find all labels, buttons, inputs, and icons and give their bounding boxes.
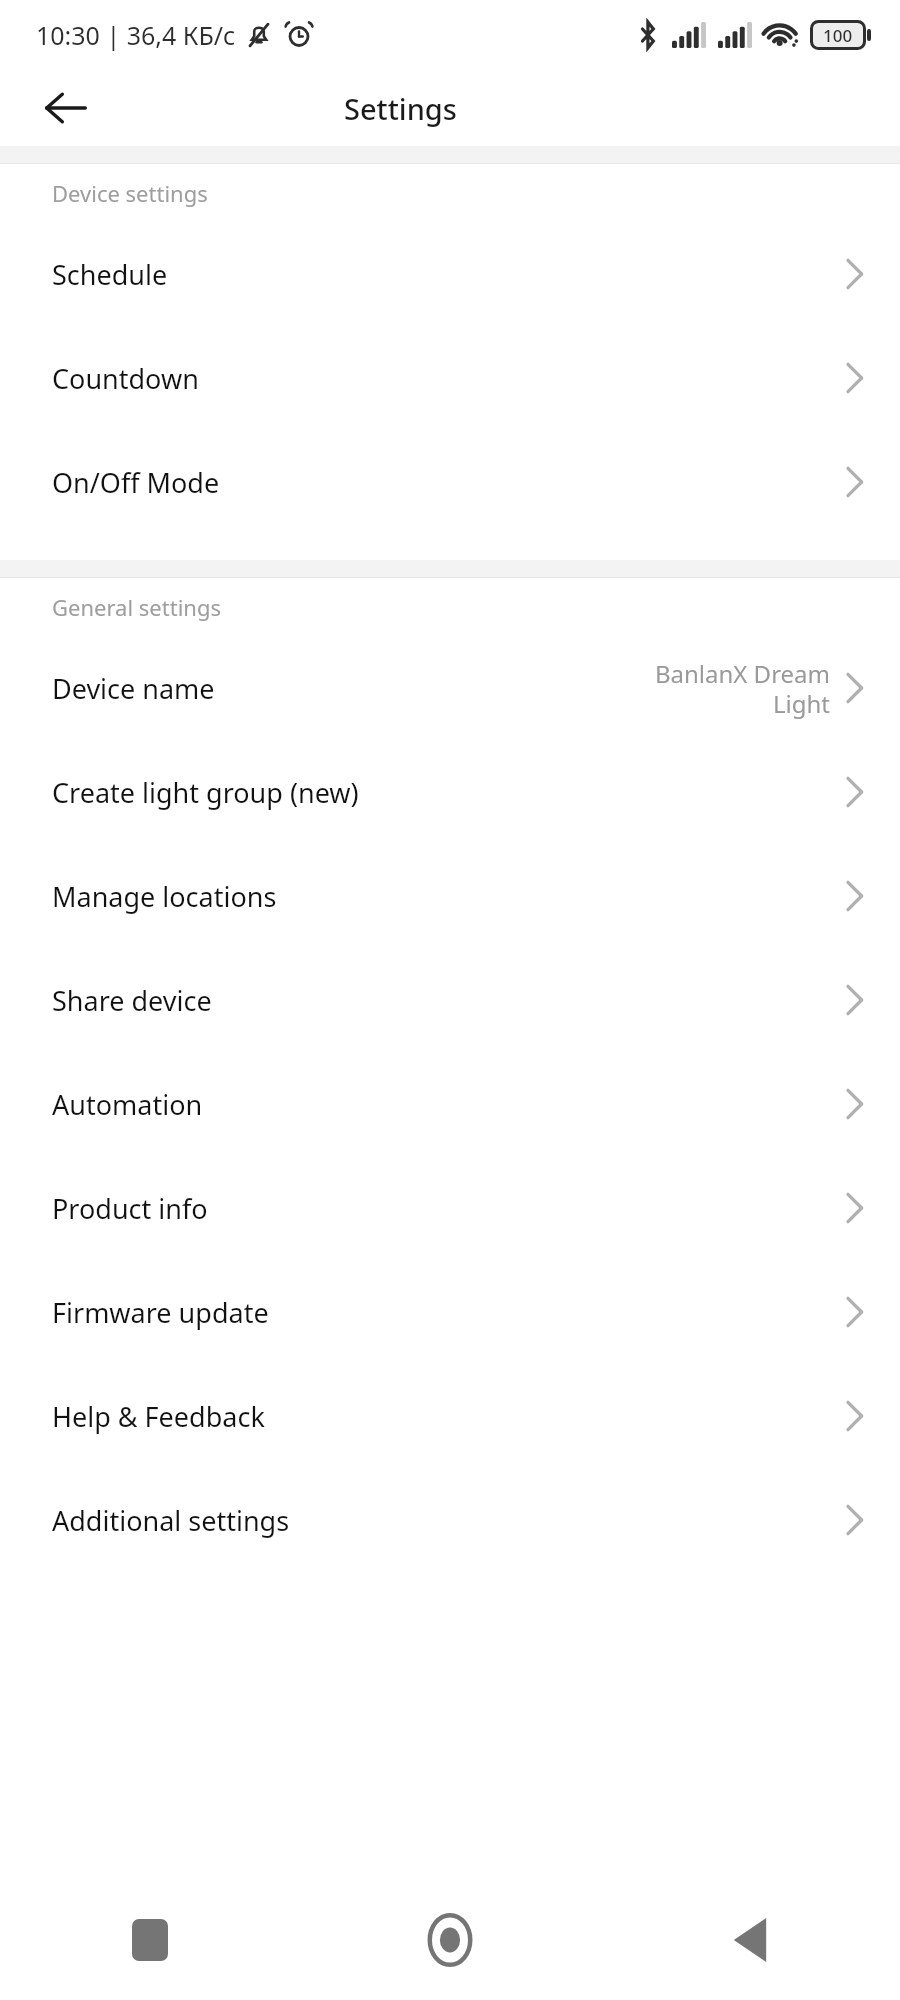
staticText: Create light group (new)	[52, 774, 359, 811]
staticText: Help & Feedback	[52, 1398, 265, 1435]
button[interactable]: Device name	[0, 636, 900, 740]
staticText: Share device	[52, 982, 212, 1019]
button[interactable]: Automation	[0, 1052, 900, 1156]
button[interactable]: Additional settings	[0, 1468, 900, 1572]
staticText: Additional settings	[52, 1502, 290, 1539]
staticText: Manage locations	[52, 878, 277, 915]
button[interactable]: Help & Feedback	[0, 1364, 900, 1468]
button[interactable]: Manage locations	[0, 844, 900, 948]
staticText: 10:30 | 36,4 КБ/с	[36, 18, 236, 52]
staticText: General settings	[52, 592, 221, 622]
button[interactable]: On/Off Mode	[0, 430, 900, 534]
staticText: Settings	[344, 89, 457, 128]
staticText: Automation	[52, 1086, 203, 1123]
button[interactable]: Firmware update	[0, 1260, 900, 1364]
staticText: Device settings	[52, 178, 208, 208]
staticText: Device name	[52, 670, 215, 707]
staticText: Firmware update	[52, 1294, 269, 1331]
button[interactable]: Back	[600, 1880, 900, 2000]
staticText: BanlanX Dream Light	[654, 657, 830, 720]
button[interactable]: Countdown	[0, 326, 900, 430]
button[interactable]: Back	[22, 70, 110, 146]
staticText: Product info	[52, 1190, 208, 1227]
staticText: On/Off Mode	[52, 464, 220, 501]
button[interactable]: Home	[300, 1880, 600, 2000]
button[interactable]: Create light group (new)	[0, 740, 900, 844]
staticText: Countdown	[52, 360, 199, 397]
button[interactable]: Schedule	[0, 222, 900, 326]
button[interactable]: Product info	[0, 1156, 900, 1260]
button[interactable]: Recents	[0, 1880, 300, 2000]
button[interactable]: Share device	[0, 948, 900, 1052]
staticText: 100	[823, 24, 853, 47]
staticText: Schedule	[52, 256, 168, 293]
